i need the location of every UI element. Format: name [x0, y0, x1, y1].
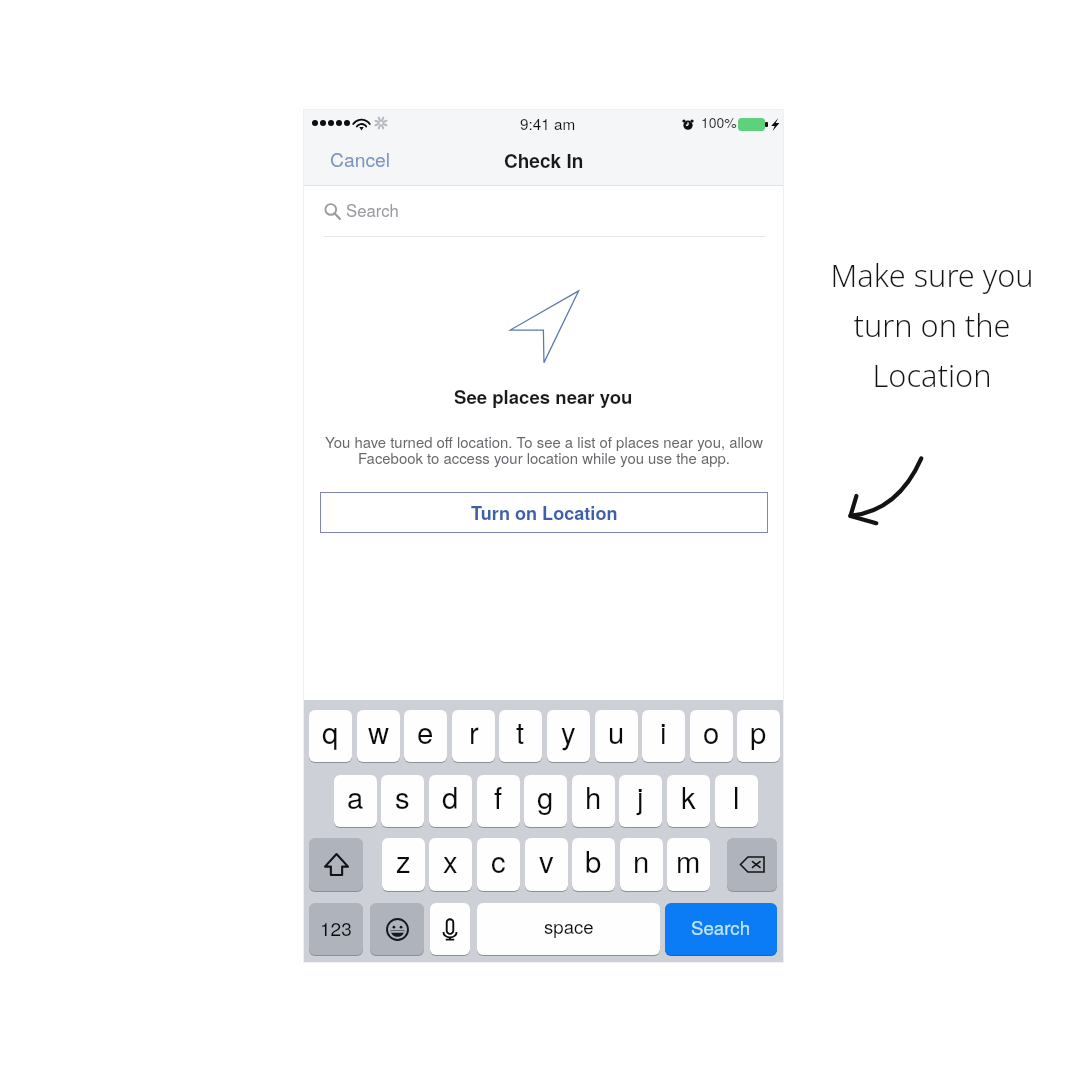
staticText: p — [750, 710, 767, 752]
staticText: l — [733, 775, 740, 817]
staticText: 123 — [320, 914, 352, 941]
button[interactable]: v — [525, 838, 568, 891]
staticText: 9:41 am — [520, 112, 576, 134]
button[interactable]: f — [477, 775, 520, 827]
staticText: q — [322, 710, 339, 752]
staticText: Search — [346, 198, 399, 222]
button[interactable]: space — [477, 903, 660, 955]
staticText: d — [442, 775, 459, 817]
staticText: Check In — [504, 147, 584, 174]
button[interactable]: Search — [665, 903, 777, 955]
button[interactable]: n — [620, 838, 663, 891]
button[interactable]: Shift — [309, 838, 363, 891]
button[interactable]: Backspace — [727, 838, 777, 891]
staticText: You have turned off location. To see a l… — [322, 431, 766, 468]
button[interactable]: 123 — [309, 903, 363, 955]
staticText: g — [537, 775, 554, 817]
staticText: z — [396, 839, 411, 881]
staticText: Make sure you turn on the Location — [830, 254, 1034, 396]
staticText: k — [681, 775, 696, 817]
staticText: 100% — [701, 112, 737, 132]
staticText: j — [637, 775, 644, 817]
button[interactable]: m — [667, 838, 710, 891]
button[interactable]: r — [452, 710, 495, 762]
button[interactable]: s — [381, 775, 424, 827]
button[interactable]: e — [404, 710, 447, 762]
staticText: m — [676, 839, 701, 881]
other: Arrow pointing to Turn on Location — [848, 456, 924, 526]
button[interactable]: t — [499, 710, 542, 762]
button[interactable]: h — [572, 775, 615, 827]
button[interactable]: i — [642, 710, 685, 762]
button[interactable]: k — [667, 775, 710, 827]
button[interactable]: d — [429, 775, 472, 827]
staticText: i — [660, 710, 667, 752]
staticText: f — [494, 775, 503, 817]
button[interactable]: c — [477, 838, 520, 891]
staticText: h — [585, 775, 602, 817]
staticText: o — [703, 710, 720, 752]
button[interactable]: o — [690, 710, 733, 762]
staticText: Search — [691, 914, 751, 941]
staticText: Cancel — [330, 145, 391, 173]
button[interactable]: y — [547, 710, 590, 762]
staticText: c — [491, 839, 506, 881]
staticText: v — [539, 839, 554, 881]
button[interactable]: w — [357, 710, 400, 762]
button[interactable]: z — [382, 838, 425, 891]
button[interactable]: b — [572, 838, 615, 891]
staticText: b — [585, 839, 602, 881]
button[interactable]: a — [334, 775, 377, 827]
staticText: w — [368, 710, 390, 752]
button[interactable]: Emoji — [370, 903, 424, 955]
staticText: t — [516, 710, 525, 752]
button[interactable]: u — [595, 710, 638, 762]
button[interactable]: Dictate — [430, 903, 470, 955]
button[interactable]: x — [429, 838, 472, 891]
staticText: u — [608, 710, 625, 752]
button[interactable]: q — [309, 710, 352, 762]
staticText: s — [395, 775, 410, 817]
staticText: space — [544, 913, 594, 940]
staticText: Turn on Location — [471, 500, 618, 526]
staticText: e — [417, 710, 434, 752]
other: Search — [324, 203, 341, 220]
button[interactable]: Cancel — [320, 140, 401, 178]
button[interactable]: p — [737, 710, 780, 762]
staticText: x — [443, 839, 458, 881]
button[interactable]: g — [524, 775, 567, 827]
staticText: See places near you — [454, 383, 633, 410]
button[interactable]: Search — [303, 186, 784, 237]
staticText: r — [469, 710, 479, 752]
button[interactable]: l — [715, 775, 758, 827]
staticText: y — [561, 710, 576, 752]
staticText: a — [347, 775, 364, 817]
staticText: n — [633, 839, 650, 881]
button[interactable]: Turn on Location — [320, 492, 768, 533]
button[interactable]: j — [619, 775, 662, 827]
